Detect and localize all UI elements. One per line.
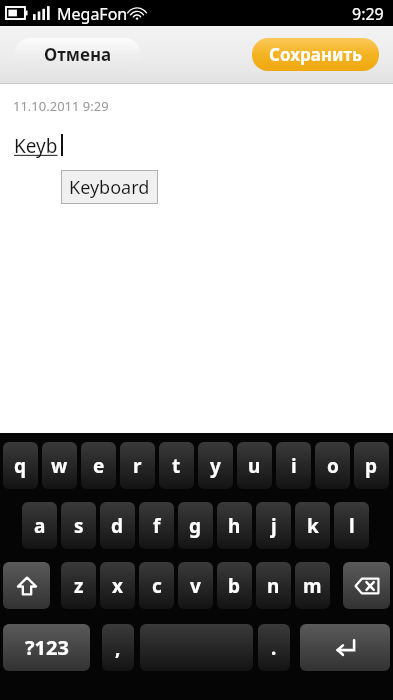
- button[interactable]: Отмена: [14, 38, 141, 71]
- staticText: p: [365, 453, 378, 479]
- button[interactable]: ,: [102, 624, 134, 671]
- button[interactable]: j: [256, 502, 291, 549]
- button[interactable]: y: [198, 442, 233, 489]
- staticText: n: [267, 573, 280, 599]
- staticText: MegaFon: [57, 3, 128, 25]
- staticText: v: [190, 573, 201, 599]
- button[interactable]: Shift: [3, 562, 50, 609]
- staticText: Сохранить: [269, 43, 363, 66]
- button[interactable]: n: [256, 562, 291, 609]
- button[interactable]: h: [217, 502, 252, 549]
- button[interactable]: Backspace: [343, 562, 390, 609]
- button[interactable]: Enter: [300, 624, 390, 671]
- staticText: h: [228, 513, 241, 539]
- staticText: q: [14, 453, 27, 479]
- button[interactable]: e: [81, 442, 116, 489]
- staticText: 11.10.2011 9:29: [13, 97, 109, 115]
- staticText: 9:29: [352, 3, 384, 25]
- staticText: w: [51, 453, 68, 479]
- staticText: d: [111, 513, 124, 539]
- button[interactable]: f: [139, 502, 174, 549]
- button[interactable]: Space: [140, 624, 253, 671]
- button[interactable]: z: [61, 562, 96, 609]
- button[interactable]: o: [315, 442, 350, 489]
- staticText: o: [327, 453, 339, 479]
- button[interactable]: b: [217, 562, 252, 609]
- staticText: Keyboard: [69, 175, 150, 200]
- staticText: k: [307, 513, 319, 539]
- staticText: r: [133, 453, 142, 479]
- staticText: .: [271, 635, 277, 661]
- button[interactable]: i: [276, 442, 311, 489]
- button[interactable]: m: [295, 562, 330, 609]
- staticText: Отмена: [44, 43, 112, 66]
- staticText: c: [152, 573, 162, 599]
- staticText: z: [74, 573, 84, 599]
- button[interactable]: .: [258, 624, 290, 671]
- button[interactable]: r: [120, 442, 155, 489]
- button[interactable]: k: [295, 502, 330, 549]
- button[interactable]: a: [22, 502, 57, 549]
- staticText: m: [303, 573, 322, 599]
- button[interactable]: Сохранить: [252, 38, 379, 71]
- button[interactable]: l: [334, 502, 369, 549]
- button[interactable]: c: [139, 562, 174, 609]
- staticText: f: [153, 513, 161, 539]
- staticText: Keyb: [14, 133, 58, 159]
- staticText: e: [93, 453, 105, 479]
- button[interactable]: x: [100, 562, 135, 609]
- staticText: x: [112, 573, 123, 599]
- button[interactable]: v: [178, 562, 213, 609]
- staticText: i: [291, 453, 297, 479]
- staticText: g: [189, 513, 202, 539]
- button[interactable]: s: [61, 502, 96, 549]
- staticText: ,: [115, 635, 121, 661]
- staticText: s: [74, 513, 84, 539]
- button[interactable]: g: [178, 502, 213, 549]
- button[interactable]: w: [42, 442, 77, 489]
- staticText: y: [210, 453, 221, 479]
- button[interactable]: d: [100, 502, 135, 549]
- button[interactable]: q: [3, 442, 38, 489]
- button[interactable]: Keyboard: [61, 170, 158, 204]
- button[interactable]: ?123: [3, 624, 90, 671]
- button[interactable]: p: [354, 442, 389, 489]
- staticText: l: [349, 513, 355, 539]
- button[interactable]: t: [159, 442, 194, 489]
- staticText: t: [172, 453, 181, 479]
- staticText: u: [248, 453, 261, 479]
- button[interactable]: u: [237, 442, 272, 489]
- staticText: ?123: [25, 634, 69, 661]
- staticText: b: [228, 573, 241, 599]
- staticText: j: [271, 513, 277, 539]
- staticText: a: [34, 513, 46, 539]
